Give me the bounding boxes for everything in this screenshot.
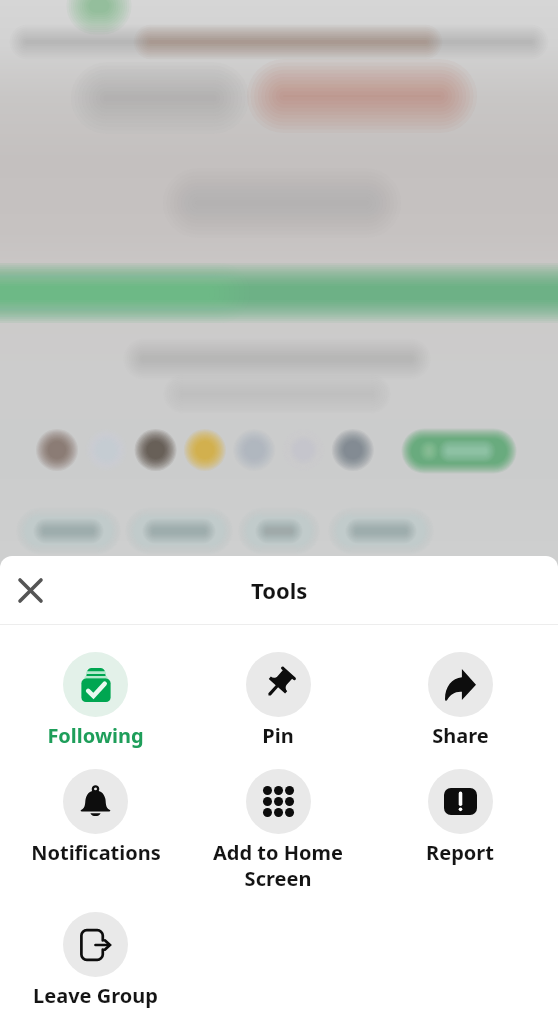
button[interactable]: Following — [4, 652, 187, 749]
button[interactable]: Leave Group — [4, 912, 187, 1009]
staticText: Share — [432, 722, 489, 749]
staticText: Following — [47, 722, 144, 749]
button[interactable]: Pin — [187, 652, 369, 749]
button[interactable]: Report — [369, 769, 551, 866]
button[interactable]: Close — [9, 569, 51, 611]
staticText: Notifications — [31, 839, 161, 866]
staticText: Leave Group — [33, 982, 158, 1009]
button[interactable]: Share — [369, 652, 551, 749]
staticText: Add to Home Screen — [204, 839, 352, 892]
staticText: Pin — [262, 722, 294, 749]
staticText: Report — [426, 839, 494, 866]
button[interactable]: Add to Home Screen — [187, 769, 369, 892]
staticText: Tools — [251, 575, 308, 605]
button[interactable]: Notifications — [4, 769, 187, 866]
